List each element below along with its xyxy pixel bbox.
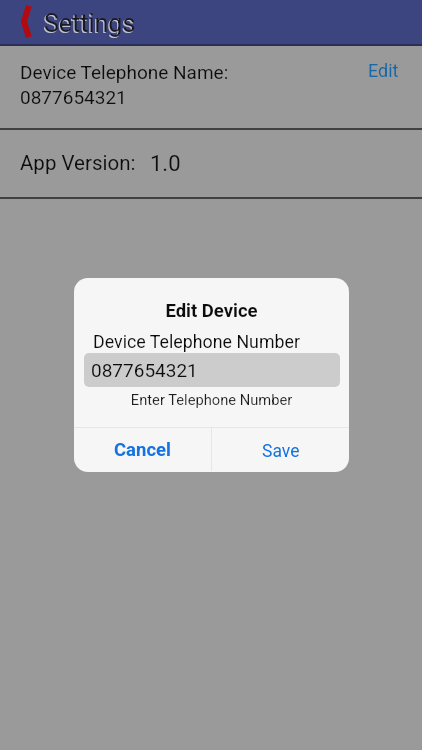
button[interactable]: Edit (356, 48, 411, 93)
staticText: 0877654321 (91, 359, 198, 381)
staticText: Settings (44, 9, 136, 38)
staticText: Enter Telephone Number (74, 391, 349, 408)
staticText: App Version: (20, 151, 136, 175)
staticText: Edit (368, 60, 399, 81)
staticText: Edit Device (74, 300, 349, 322)
button[interactable]: 0877654321 (84, 353, 340, 387)
button[interactable]: Cancel (74, 428, 211, 471)
staticText: Cancel (114, 439, 171, 461)
staticText: 0877654321 (20, 86, 127, 108)
staticText: Device Telephone Number (74, 331, 334, 352)
staticText: Save (262, 441, 300, 462)
button[interactable]: Back (12, 0, 40, 44)
staticText: Settings (43, 10, 135, 39)
staticText: 1.0 (150, 151, 181, 177)
staticText: Device Telephone Name: (20, 61, 229, 83)
button[interactable]: Save (212, 428, 349, 471)
